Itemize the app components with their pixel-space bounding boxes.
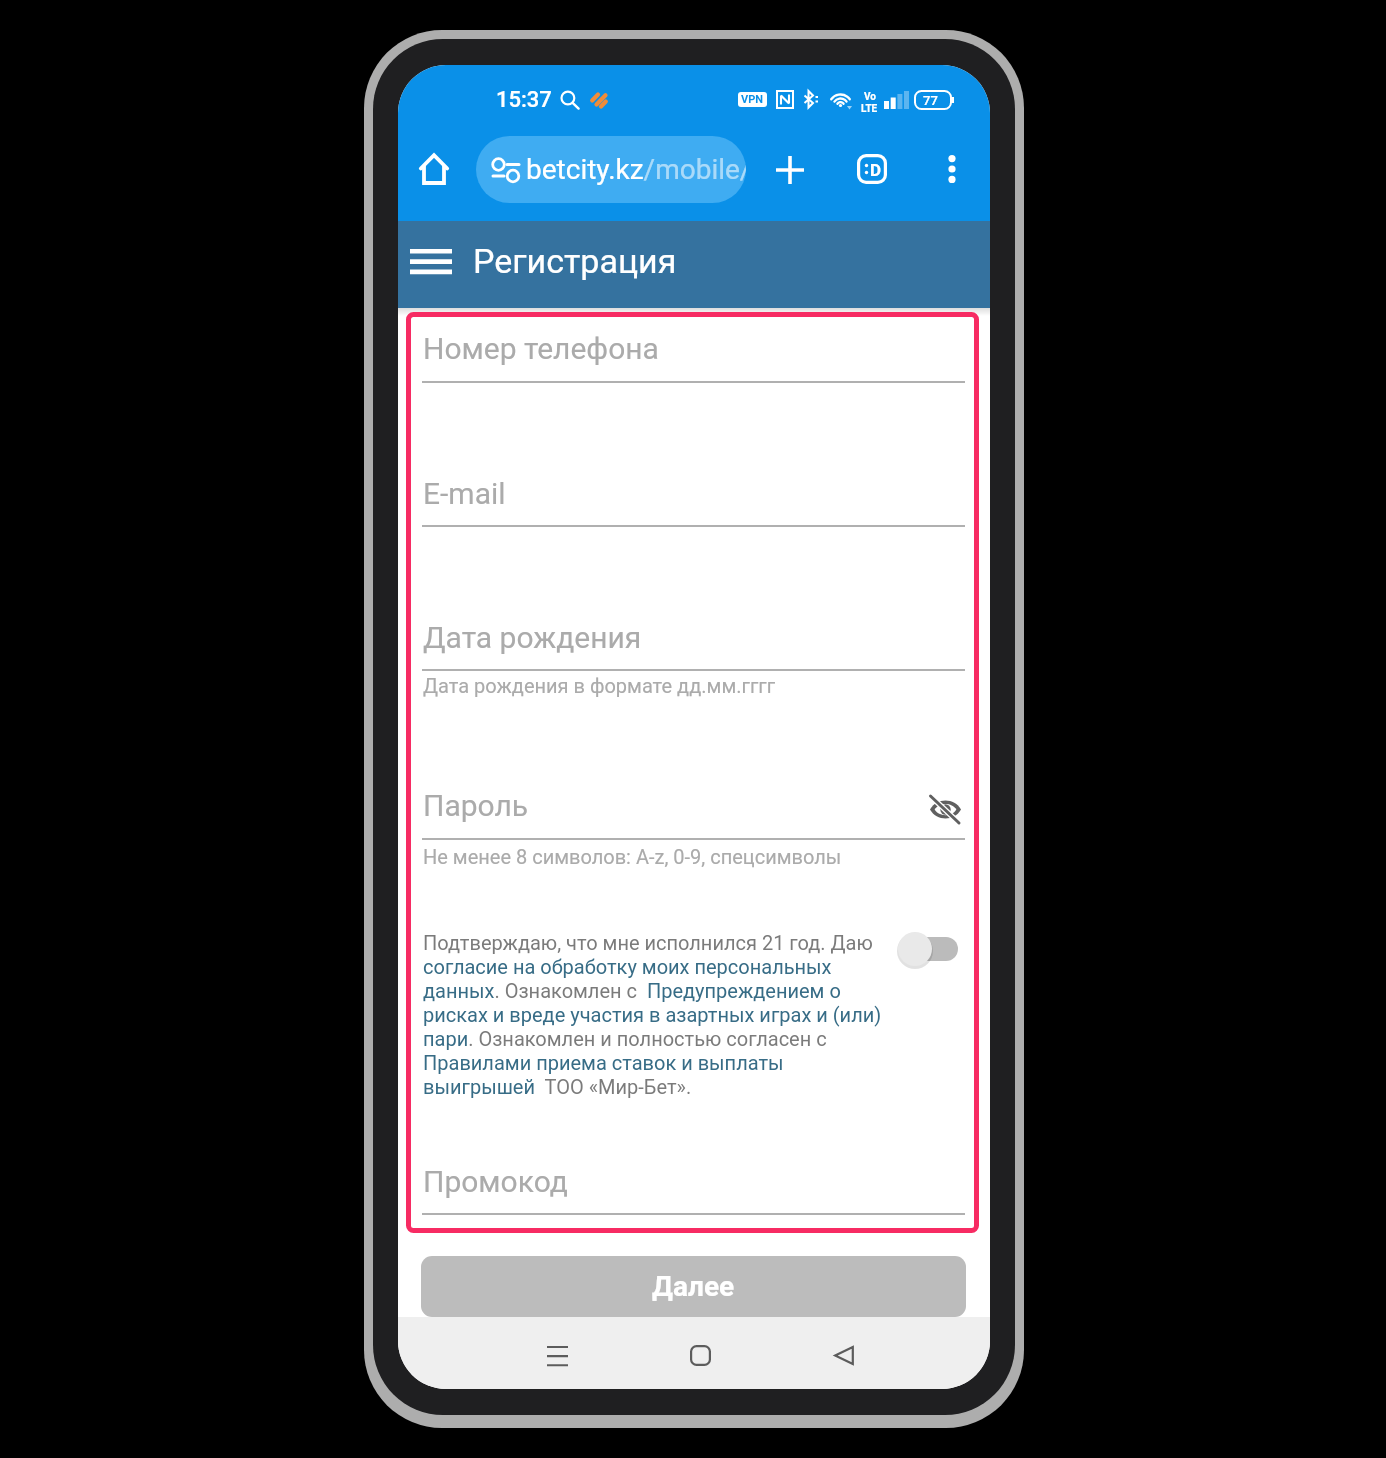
- staticText: Регистрация: [473, 241, 677, 281]
- staticText: E-mail: [423, 476, 506, 511]
- button[interactable]: Промокод: [422, 1156, 965, 1215]
- staticText: Дата рождения в формате дд.мм.гггг: [423, 674, 776, 697]
- button[interactable]: Recents: [531, 1329, 584, 1382]
- staticText: Не менее 8 символов: A-z, 0-9, спецсимво…: [423, 845, 842, 868]
- button[interactable]: E-mail: [422, 468, 965, 527]
- staticText: betcity.kz/mobile/: [526, 153, 746, 186]
- staticText: VPN: [741, 93, 764, 106]
- staticText: Дата рождения: [423, 620, 642, 655]
- button[interactable]: Show password: [919, 783, 971, 835]
- button[interactable]: betcity.kz/mobile/: [476, 136, 746, 203]
- staticText: Vo: [864, 91, 876, 103]
- button[interactable]: Menu: [398, 234, 464, 296]
- staticText: 77: [923, 93, 938, 108]
- button[interactable]: Далее: [421, 1256, 966, 1317]
- button[interactable]: New tab: [765, 145, 815, 195]
- staticText: Промокод: [423, 1164, 568, 1199]
- staticText: Далее: [652, 1270, 735, 1303]
- button[interactable]: More options: [928, 145, 976, 193]
- staticText: D: [870, 160, 882, 180]
- staticText: LTE: [861, 103, 878, 115]
- button[interactable]: Home: [674, 1329, 727, 1382]
- staticText: Подтверждаю, что мне исполнился 21 год. …: [423, 931, 886, 1099]
- button[interactable]: Accept terms: [892, 925, 974, 975]
- button[interactable]: Home: [409, 143, 459, 193]
- button[interactable]: Tabs: [847, 144, 897, 194]
- staticText: 15:37: [496, 87, 552, 113]
- staticText: Номер телефона: [423, 331, 659, 366]
- button[interactable]: Пароль: [422, 780, 965, 840]
- button[interactable]: Дата рождения: [422, 612, 965, 671]
- button[interactable]: Номер телефона: [422, 323, 965, 383]
- button[interactable]: Back: [817, 1329, 870, 1382]
- staticText: Пароль: [423, 788, 529, 823]
